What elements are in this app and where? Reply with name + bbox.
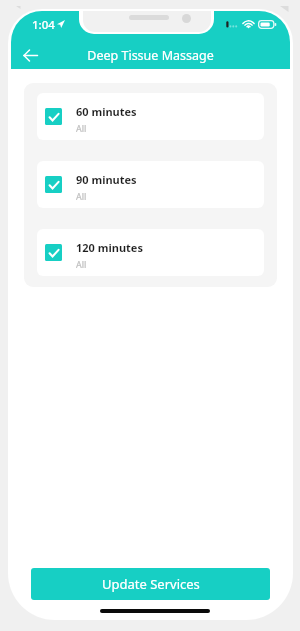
staticText: 60 minutes	[76, 104, 137, 119]
staticText: 120 minutes	[76, 240, 143, 255]
staticText: Deep Tissue Massage	[11, 47, 290, 64]
staticText: 1:04	[32, 17, 55, 33]
staticText: 90 minutes	[76, 172, 137, 187]
staticText: All	[76, 190, 87, 202]
button[interactable]: 60 minutes	[37, 93, 264, 140]
staticText: All	[76, 258, 87, 270]
button[interactable]: Back	[13, 44, 47, 66]
button[interactable]: 90 minutes	[37, 161, 264, 208]
button[interactable]: 120 minutes	[37, 229, 264, 276]
staticText: All	[76, 122, 87, 134]
staticText: Update Services	[102, 575, 200, 593]
button[interactable]: Update Services	[31, 568, 270, 600]
